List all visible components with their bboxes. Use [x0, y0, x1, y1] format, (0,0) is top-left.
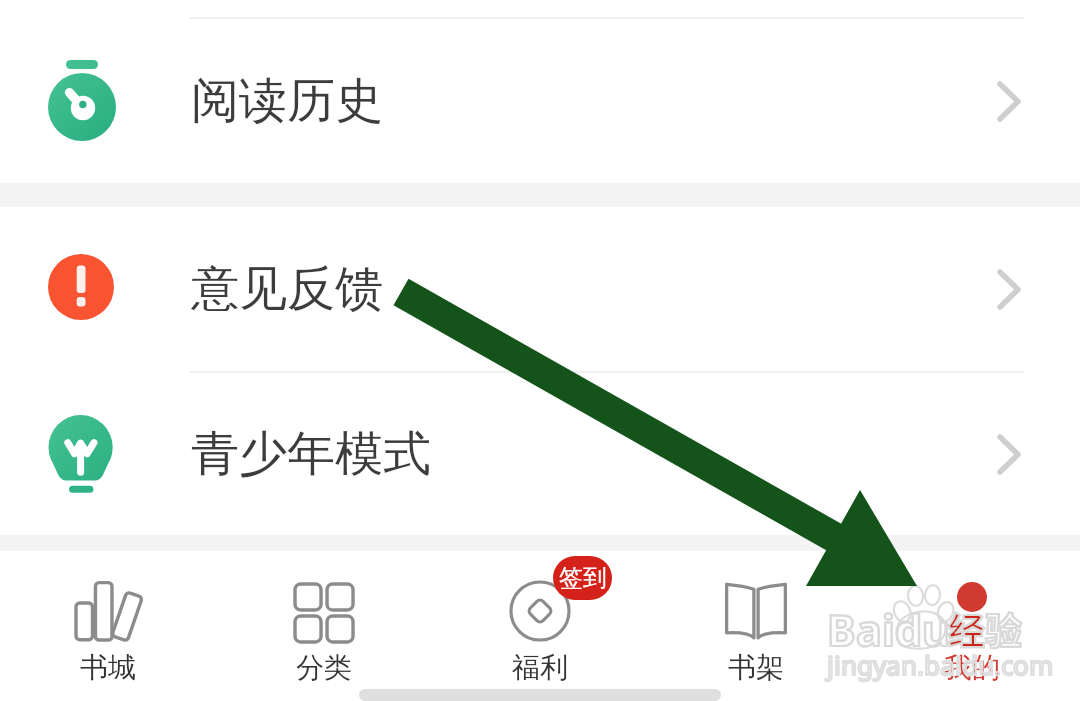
- button[interactable]: 青少年模式: [0, 373, 1080, 535]
- button[interactable]: 阅读历史: [0, 19, 1080, 183]
- staticText: 书城: [80, 650, 136, 685]
- staticText: 书架: [728, 650, 784, 685]
- staticText: 青少年模式: [191, 424, 431, 484]
- button[interactable]: 书城: [0, 551, 216, 685]
- staticText: 我的: [944, 650, 1000, 685]
- button[interactable]: 福利: [432, 551, 648, 685]
- staticText: 阅读历史: [191, 71, 383, 131]
- button[interactable]: 分类: [216, 551, 432, 685]
- staticText: 分类: [296, 650, 352, 685]
- button[interactable]: 我的: [864, 551, 1080, 685]
- staticText: 福利: [512, 650, 568, 685]
- staticText: 签到: [559, 563, 607, 593]
- button[interactable]: 书架: [648, 551, 864, 685]
- staticText: 意见反馈: [191, 259, 383, 319]
- button[interactable]: 意见反馈: [0, 207, 1080, 371]
